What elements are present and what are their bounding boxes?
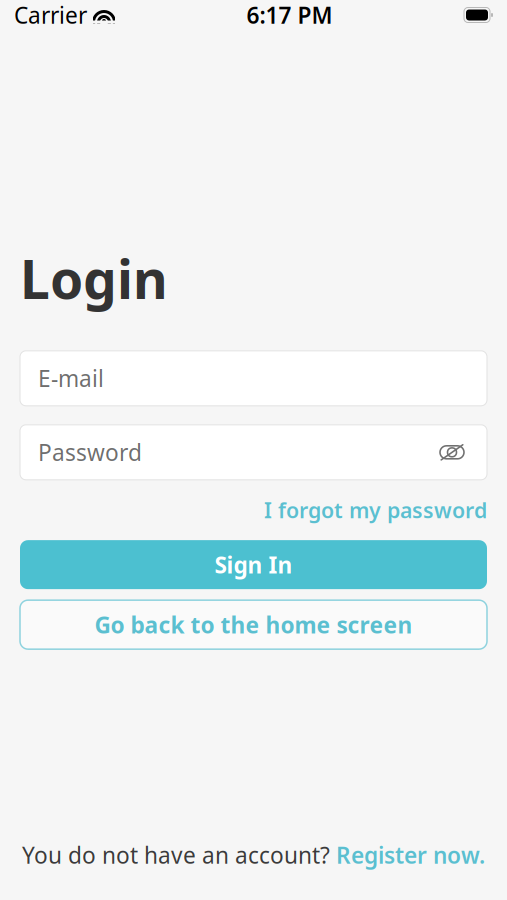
button[interactable]: Go back to the home screen [20,600,487,649]
staticText: Sign In [214,550,292,580]
staticText: Carrier [14,0,87,30]
button[interactable]: Sign In [20,540,487,589]
button[interactable]: You do not have an account? [22,840,485,870]
button[interactable]: I forgot my password [264,496,487,524]
staticText: 6:17 PM [246,0,332,30]
staticText: Register now. [336,840,485,870]
staticText: Go back to the home screen [94,610,412,640]
staticText: You do not have an account? [22,840,336,870]
staticText: I forgot my password [264,496,487,524]
button[interactable]: Show password [435,435,469,469]
button[interactable]: Password [20,425,487,480]
staticText: E-mail [38,363,104,393]
button[interactable]: E-mail [20,351,487,406]
staticText: Login [20,243,168,314]
staticText: Password [38,437,142,467]
